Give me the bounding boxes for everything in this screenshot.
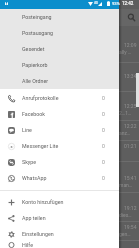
staticText: gen… [119,231,131,237]
staticText: Skype [22,159,37,165]
staticText: 0 [102,127,105,133]
button[interactable]: Anrufprotokolle [0,90,119,106]
staticText: App teilen [22,215,46,221]
staticText: Hilfe [22,242,33,248]
staticText: dies… [119,212,132,218]
staticText: Facebook [22,111,46,117]
staticText: 0 [102,95,105,101]
staticText: Line [22,127,32,133]
button[interactable]: Gesendet [0,41,119,57]
button[interactable]: Search [125,11,137,23]
button[interactable]: Einstellungen [0,226,119,242]
staticText: 01:21 [124,143,137,149]
staticText: 15:41 [124,175,137,181]
button[interactable]: Posteingang [0,9,119,25]
staticText: Konto hinzufügen [22,199,64,205]
button[interactable]: App teilen [0,210,119,226]
button[interactable]: WhatsApp [0,170,119,186]
staticText: 0 [102,159,105,165]
staticText: Gesendet [22,46,45,52]
staticText: 19:12 [124,205,137,211]
button[interactable]: Hilfe [0,242,119,248]
button[interactable]: Facebook [0,106,119,122]
button[interactable]: Alle Ordner [0,73,119,89]
staticText: Postausgang [22,30,54,36]
staticText: ally … [119,49,132,55]
button[interactable]: Messenger Lite [0,138,119,154]
button[interactable]: Konto hinzufügen [0,194,119,210]
staticText: 12:09 [124,42,137,48]
staticText: Anrufprotokolle [22,95,59,101]
staticText: 0 [102,111,105,117]
staticText: 4G [94,1,98,5]
staticText: anz… [119,130,131,136]
staticText: Einstellungen [22,231,54,237]
staticText: 2…1… [119,110,132,116]
button[interactable]: Papierkorb [0,57,119,73]
staticText: 0 [102,175,105,181]
staticText: WhatsApp [22,175,47,181]
button[interactable]: Line [0,122,119,138]
staticText: Posteingang [22,14,52,20]
staticText: 93% [112,1,120,6]
staticText: 12:25 [124,103,137,109]
staticText: 12:42 [122,1,134,6]
button[interactable]: Postausgang [0,25,119,41]
staticText: man… [119,182,133,188]
staticText: 19:54 [124,224,137,230]
staticText: 0 [102,143,105,149]
staticText: Messenger Lite [22,143,59,149]
staticText: Alle Ordner [22,78,49,84]
staticText: Papierkorb [22,62,48,68]
staticText: 12:22 [124,123,137,129]
button[interactable]: Skype [0,154,119,170]
staticText: 13:34 [124,73,137,79]
